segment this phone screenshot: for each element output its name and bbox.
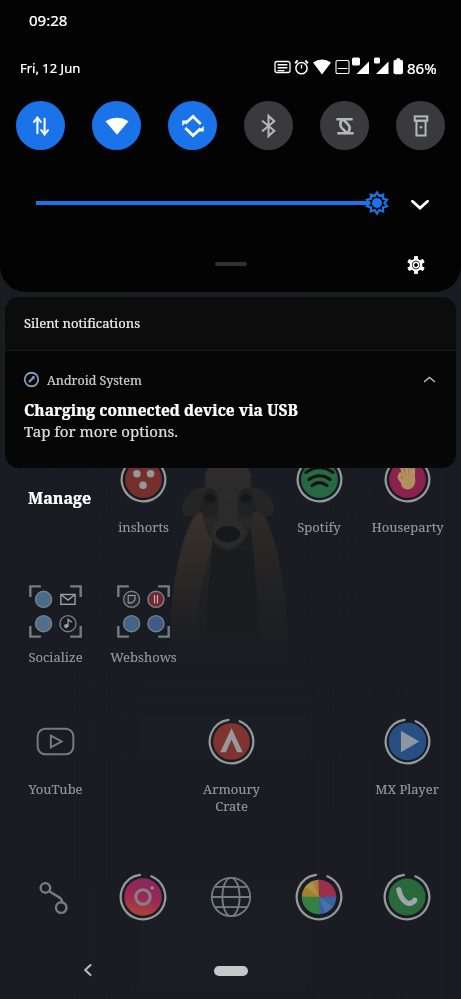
button[interactable]: Auto rotate	[168, 101, 217, 150]
staticText: Charging connected device via USB	[24, 399, 298, 420]
button[interactable]: Armoury Crate	[187, 718, 275, 815]
staticText: Armoury Crate	[203, 780, 260, 815]
button[interactable]: Photos	[291, 869, 347, 925]
button[interactable]: Settings	[399, 248, 432, 281]
staticText: Android System	[47, 372, 142, 389]
button[interactable]: Bluetooth	[244, 101, 293, 150]
button[interactable]: Manage	[28, 487, 92, 509]
button[interactable]: inshorts	[99, 456, 187, 536]
button[interactable]: Messages	[27, 869, 83, 925]
staticText: YouTube	[28, 780, 83, 798]
button[interactable]: Mobile data	[16, 101, 65, 150]
button[interactable]: Phone	[379, 869, 435, 925]
staticText: Socialize	[28, 648, 83, 666]
staticText: inshorts	[118, 518, 169, 536]
button[interactable]: MX Player	[363, 718, 451, 798]
staticText: Manage	[28, 487, 92, 509]
button[interactable]: Collapse	[415, 365, 443, 393]
staticText: Silent notifications	[24, 314, 140, 332]
button[interactable]: Expand quick settings	[403, 187, 437, 221]
button[interactable]: Browser	[203, 869, 259, 925]
button[interactable]: Instagram	[115, 869, 171, 925]
button[interactable]: Spotify	[275, 456, 363, 536]
staticText: Fri, 12 Jun	[20, 59, 81, 77]
button[interactable]: Houseparty	[363, 456, 451, 536]
button[interactable]: Webshows	[99, 585, 187, 666]
button[interactable]: Android System	[5, 351, 456, 468]
staticText: Houseparty	[371, 518, 444, 536]
staticText: 09:28	[29, 10, 68, 30]
staticText: Tap for more options.	[24, 421, 179, 441]
staticText: Webshows	[110, 648, 177, 666]
button[interactable]: Wi-Fi	[92, 101, 141, 150]
staticText: 86%	[407, 58, 437, 78]
staticText: Spotify	[297, 518, 341, 536]
button[interactable]: Flashlight	[396, 101, 445, 150]
button[interactable]: Socialize	[11, 585, 99, 666]
button[interactable]: Back	[70, 952, 106, 988]
button[interactable]: NFC	[320, 101, 369, 150]
button[interactable]: Home	[214, 966, 248, 976]
button[interactable]: Brightness	[22, 186, 396, 220]
staticText: MX Player	[375, 780, 439, 798]
button[interactable]: YouTube	[11, 718, 99, 798]
button[interactable]: Silent notifications	[5, 297, 456, 350]
